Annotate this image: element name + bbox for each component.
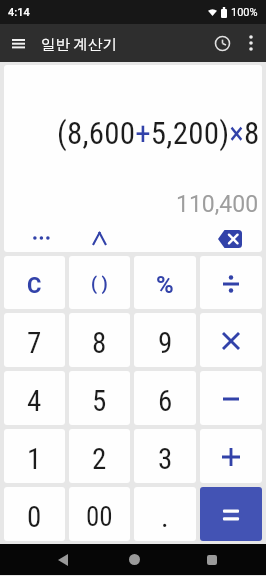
button[interactable]	[192, 544, 232, 575]
staticText: (8,600+5,200)×8	[57, 115, 260, 151]
button[interactable]: 3	[134, 429, 196, 483]
staticText: 1	[27, 442, 42, 476]
staticText: %	[156, 271, 174, 299]
staticText: 110,400	[176, 191, 259, 218]
button[interactable]	[200, 429, 262, 483]
button[interactable]	[114, 544, 154, 575]
staticText: 4	[27, 384, 42, 418]
staticText: 8	[92, 326, 107, 360]
button[interactable]	[0, 24, 36, 62]
button[interactable]	[24, 223, 58, 252]
staticText: 7	[27, 326, 42, 360]
button[interactable]: 8	[69, 313, 130, 367]
staticText: .	[161, 500, 169, 534]
button[interactable]: .	[134, 487, 196, 541]
button[interactable]: 00	[69, 487, 130, 541]
staticText: 3	[158, 442, 173, 476]
button[interactable]: 6	[134, 371, 196, 425]
button[interactable]: %	[134, 256, 196, 309]
button[interactable]	[200, 487, 262, 541]
button[interactable]: 2	[69, 429, 130, 483]
button[interactable]: ( )	[69, 256, 130, 309]
staticText: 0	[27, 500, 42, 534]
button[interactable]: 9	[134, 313, 196, 367]
staticText: 일반 계산기	[41, 35, 118, 53]
staticText: 2	[92, 442, 107, 476]
button[interactable]	[200, 371, 262, 425]
staticText: ( )	[91, 274, 108, 295]
button[interactable]: 1	[4, 429, 65, 483]
button[interactable]: 0	[4, 487, 65, 541]
button[interactable]	[236, 24, 266, 62]
button[interactable]	[210, 223, 250, 252]
staticText: 00	[86, 501, 113, 533]
button[interactable]: 4	[4, 371, 65, 425]
button[interactable]	[208, 24, 236, 62]
staticText: C	[27, 273, 42, 299]
button[interactable]	[82, 223, 116, 252]
staticText: 4:14	[8, 6, 30, 19]
staticText: 5	[92, 384, 107, 418]
button[interactable]: C	[4, 256, 65, 309]
button[interactable]: 7	[4, 313, 65, 367]
staticText: 100%	[231, 6, 258, 19]
button[interactable]	[200, 256, 262, 309]
staticText: 9	[158, 326, 173, 360]
button[interactable]	[43, 544, 83, 575]
staticText: 6	[158, 384, 173, 418]
button[interactable]	[200, 313, 262, 367]
button[interactable]: 5	[69, 371, 130, 425]
